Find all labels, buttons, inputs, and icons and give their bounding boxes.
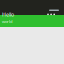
staticText: world [2, 19, 12, 24]
staticText: Hello [2, 11, 14, 18]
